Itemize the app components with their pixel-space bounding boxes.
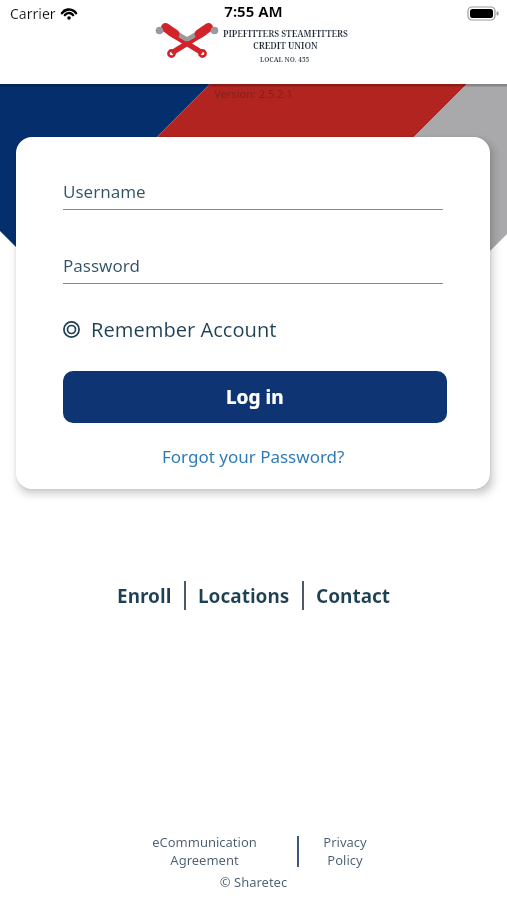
- staticText: Log in: [226, 384, 284, 410]
- staticText: PIPEFITTERS STEAMFITTERS: [223, 28, 348, 40]
- staticText: LOCAL NO. 455: [260, 55, 310, 64]
- button[interactable]: eCommunication Agreement: [152, 833, 257, 869]
- staticText: Version: 2.5.2.1: [0, 86, 507, 101]
- button[interactable]: Remember Account: [63, 316, 277, 343]
- staticText: Carrier: [10, 4, 56, 23]
- staticText: Password: [63, 254, 140, 277]
- button[interactable]: Forgot your Password?: [162, 445, 345, 468]
- button[interactable]: Password: [63, 254, 443, 284]
- button[interactable]: Locations: [198, 583, 290, 609]
- button[interactable]: Enroll: [117, 583, 172, 609]
- staticText: Remember Account: [91, 316, 277, 343]
- staticText: Username: [63, 180, 146, 203]
- staticText: CREDIT UNION: [253, 40, 318, 52]
- button[interactable]: Log in: [63, 371, 447, 423]
- staticText: 7:55 AM: [0, 1, 507, 21]
- staticText: © Sharetec: [0, 873, 507, 891]
- button[interactable]: Privacy Policy: [323, 833, 367, 869]
- button[interactable]: Contact: [316, 583, 391, 609]
- button[interactable]: Username: [63, 180, 443, 210]
